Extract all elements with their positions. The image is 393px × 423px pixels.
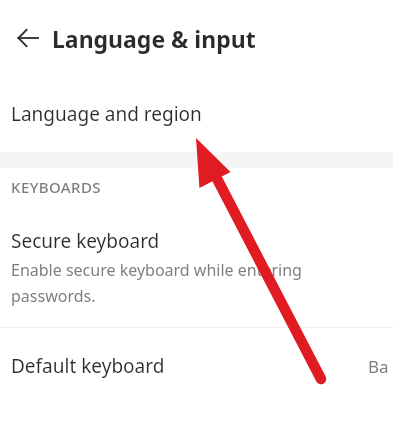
- staticText: Language and region: [11, 101, 202, 127]
- button[interactable]: Default keyboard: [0, 328, 393, 404]
- staticText: Secure keyboard: [11, 228, 160, 254]
- button[interactable]: Secure keyboard: [0, 206, 393, 319]
- staticText: Ba: [368, 355, 389, 378]
- staticText: Language & input: [52, 23, 256, 54]
- button[interactable]: Back: [8, 18, 48, 58]
- staticText: Default keyboard: [11, 353, 368, 379]
- staticText: Enable secure keyboard while entering pa…: [11, 259, 379, 307]
- button[interactable]: Language and region: [0, 76, 393, 152]
- staticText: KEYBOARDS: [11, 177, 101, 197]
